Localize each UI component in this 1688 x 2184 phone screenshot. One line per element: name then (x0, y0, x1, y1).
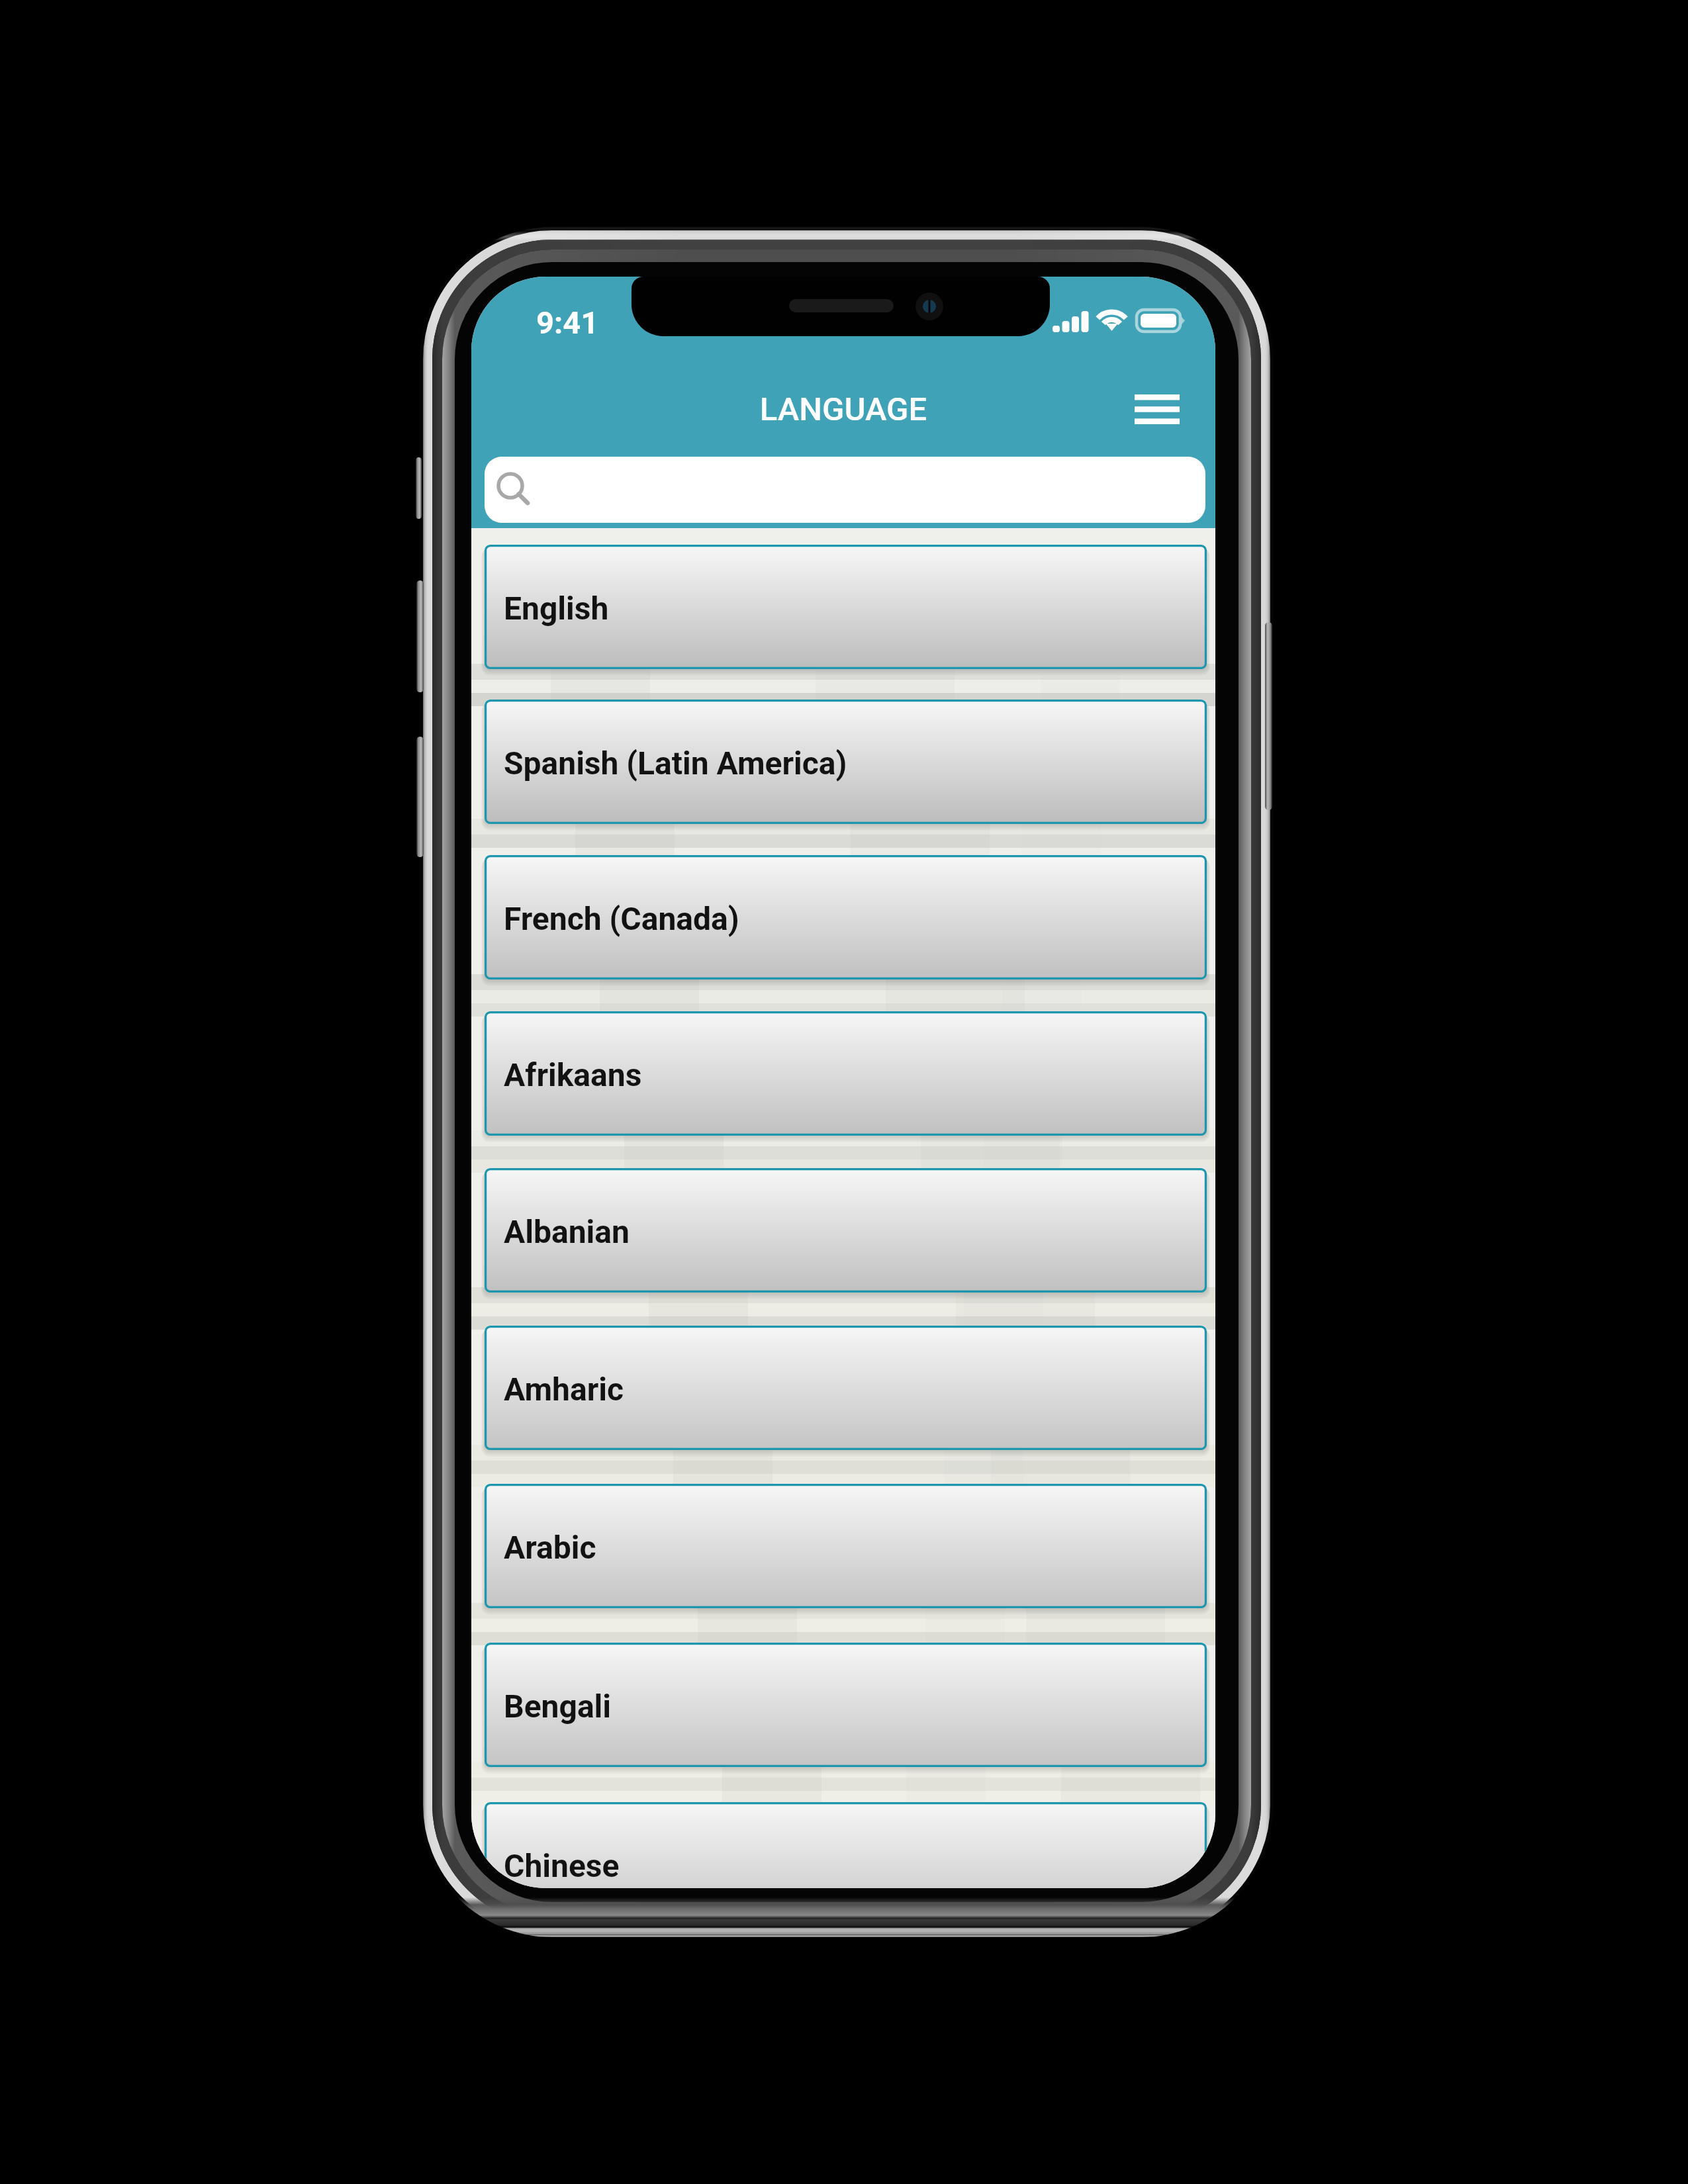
button[interactable]: French (Canada) (485, 855, 1207, 979)
staticText: French (Canada) (504, 900, 739, 937)
staticText: 9:41 (536, 304, 599, 341)
staticText: Bengali (504, 1688, 611, 1725)
staticText: Spanish (Latin America) (504, 745, 847, 782)
staticText: Albanian (504, 1213, 630, 1250)
button[interactable]: Menu (1115, 375, 1199, 443)
button[interactable]: Albanian (485, 1168, 1207, 1293)
button[interactable]: Chinese (485, 1802, 1207, 1888)
staticText: Arabic (504, 1529, 596, 1566)
staticText: LANGUAGE (471, 390, 1215, 428)
button[interactable]: Spanish (Latin America) (485, 700, 1207, 824)
staticText: Amharic (504, 1371, 624, 1408)
button[interactable]: Arabic (485, 1484, 1207, 1608)
staticText: Afrikaans (504, 1056, 642, 1093)
staticText: Chinese (504, 1847, 620, 1884)
button[interactable]: Search (485, 457, 1205, 523)
button[interactable]: Afrikaans (485, 1011, 1207, 1136)
button[interactable]: Amharic (485, 1326, 1207, 1450)
button[interactable]: English (485, 545, 1207, 669)
button[interactable]: Bengali (485, 1643, 1207, 1767)
staticText: English (504, 590, 609, 627)
